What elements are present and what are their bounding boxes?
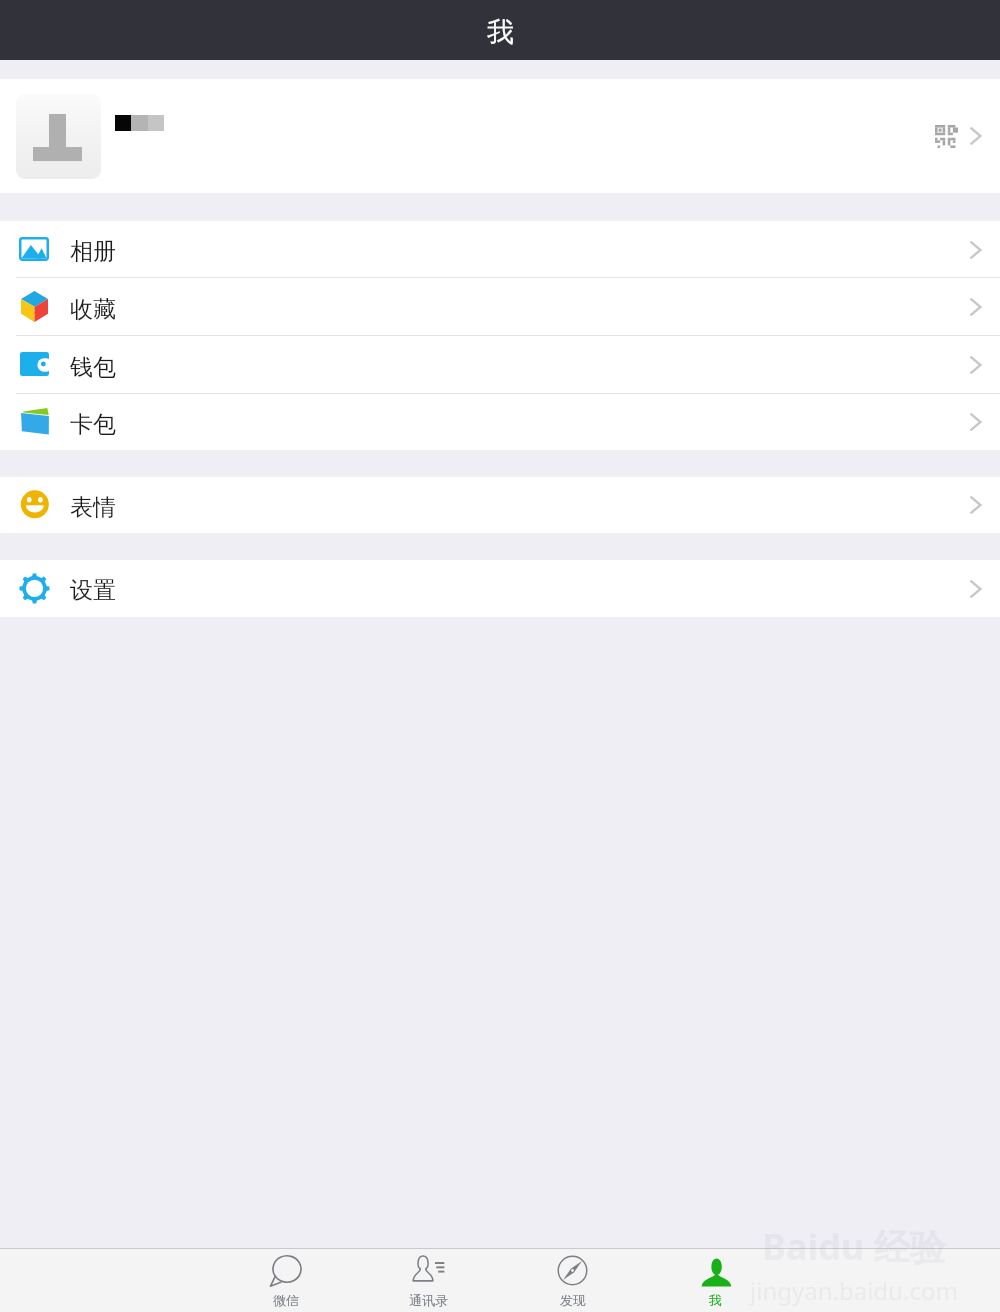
staticText: 发现 [560,1292,586,1308]
staticText: 卡包 [70,410,116,439]
button[interactable]: 我 [644,1249,787,1312]
staticText: 钱包 [70,353,116,382]
button[interactable]: 钱包 [0,336,1000,394]
staticText: jingyan.baidu.com [750,1274,958,1307]
staticText: 收藏 [70,295,116,324]
button[interactable]: 通讯录 [357,1249,500,1312]
button[interactable]: My QR code [929,119,963,153]
staticText: 我 [487,15,514,49]
button[interactable]: 卡包 [0,394,1000,450]
button[interactable]: 表情 [0,477,1000,533]
staticText: 通讯录 [409,1292,448,1308]
button[interactable]: 相册 [0,221,1000,278]
button[interactable]: 设置 [0,560,1000,617]
button[interactable]: My QR code [0,79,1000,193]
staticText: 设置 [70,576,116,605]
button[interactable]: 微信 [214,1249,357,1312]
staticText: 表情 [70,493,116,522]
staticText: Baidu 经验 [762,1222,946,1271]
button[interactable]: 收藏 [0,278,1000,336]
button[interactable]: 发现 [501,1249,644,1312]
staticText: 微信 [273,1292,299,1308]
staticText: 相册 [70,237,116,266]
staticText: 我 [709,1292,722,1308]
